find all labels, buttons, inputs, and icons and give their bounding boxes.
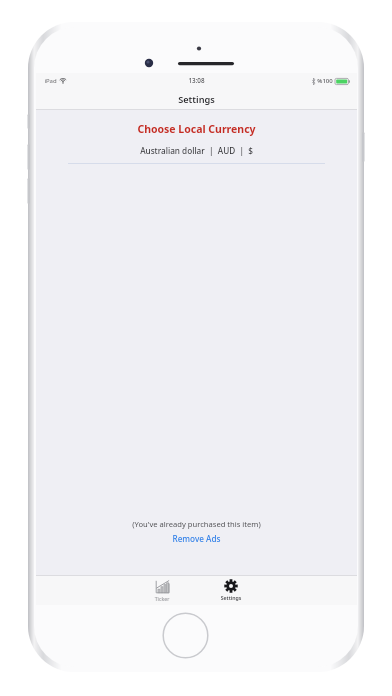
button[interactable]: Remove Ads: [36, 533, 357, 544]
button[interactable]: Settings: [209, 577, 253, 601]
staticText: Ticker: [140, 595, 184, 602]
staticText: %100: [317, 77, 333, 85]
staticText: Remove Ads: [36, 533, 357, 544]
button[interactable]: Home: [162, 612, 209, 659]
staticText: Choose Local Currency: [36, 122, 357, 136]
button[interactable]: Australian dollar | AUD | $: [36, 145, 357, 164]
button[interactable]: Ticker: [140, 577, 184, 602]
staticText: Australian dollar | AUD | $: [36, 145, 357, 156]
staticText: Settings: [36, 93, 357, 106]
staticText: Settings: [209, 594, 253, 601]
staticText: (You've already purchased this item): [36, 519, 357, 529]
staticText: iPad: [44, 77, 57, 85]
staticText: 13:08: [36, 76, 357, 85]
